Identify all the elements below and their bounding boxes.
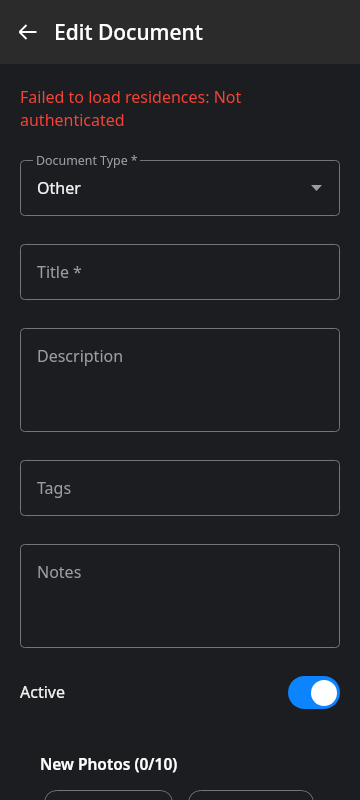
staticText: Edit Document — [54, 18, 203, 47]
button[interactable]: Back — [12, 16, 44, 48]
button[interactable]: Gallery — [188, 790, 314, 800]
staticText: Other — [37, 177, 81, 199]
button[interactable]: Camera — [44, 790, 173, 800]
button[interactable]: Open dropdown — [304, 176, 328, 200]
button[interactable]: Title * — [20, 244, 340, 300]
button[interactable]: Tags — [20, 460, 340, 516]
staticText: Document Type * — [36, 152, 138, 168]
staticText: Title * — [37, 261, 82, 283]
staticText: Active — [20, 681, 65, 703]
staticText: New Photos (0/10) — [40, 753, 178, 774]
staticText: Description — [37, 345, 124, 367]
staticText: Tags — [37, 477, 72, 499]
button[interactable]: Active — [20, 675, 340, 709]
button[interactable]: Notes — [20, 544, 340, 648]
staticText: Notes — [37, 561, 82, 583]
button[interactable]: Description — [20, 328, 340, 432]
staticText: Failed to load residences: Not authentic… — [20, 86, 340, 131]
button[interactable]: Document Type * — [20, 160, 340, 216]
button[interactable]: Active toggle, on — [288, 676, 340, 709]
